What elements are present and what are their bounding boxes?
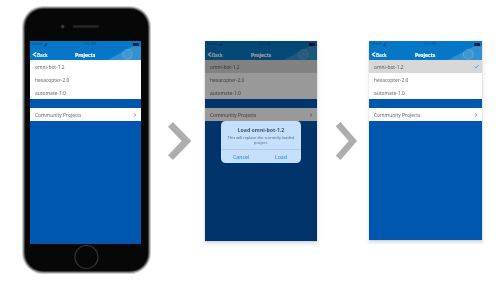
button[interactable]: omni-bot-1.2 [30,60,141,73]
staticText: Community Projects [35,112,82,119]
staticText: automate-1.0 [35,90,66,97]
staticText: Load omni-bot-1.2 [221,126,301,133]
button[interactable]: Back [205,49,317,60]
staticText: Projects [415,51,436,58]
staticText: 9:41 AM [84,42,97,46]
button[interactable]: hexacopter-2.0 [205,73,317,86]
staticText: Projects [251,51,272,58]
button[interactable]: Load [261,150,301,163]
button[interactable]: hexacopter-2.0 [369,73,482,86]
staticText: This will replace the currently loaded p… [227,135,295,145]
button[interactable]: omni-bot-1.2 [369,60,482,73]
staticText: 9:41 AM [259,42,272,46]
staticText: omni-bot-1.2 [35,64,65,71]
staticText: hexacopter-2.0 [35,77,70,84]
staticText: Community Projects [374,112,421,119]
staticText: Load [275,153,287,160]
other: Selected [474,64,479,69]
button[interactable]: automate-1.0 [30,86,141,99]
button[interactable]: Community Projects [369,108,482,121]
staticText: Projects [75,51,96,58]
staticText: omni-bot-1.2 [210,64,240,71]
button[interactable]: Community Projects [30,108,141,121]
staticText: Cancel [233,153,250,160]
button[interactable]: Back [369,49,482,60]
staticText: hexacopter-2.0 [210,77,245,84]
button[interactable]: hexacopter-2.0 [30,73,141,86]
staticText: Carrier [207,42,218,46]
staticText: 9:41 AM [424,42,437,46]
staticText: hexacopter-2.0 [374,77,409,84]
button[interactable]: Cancel [221,150,261,163]
button[interactable]: Community Projects [205,108,317,121]
button[interactable]: omni-bot-1.2 [205,60,317,73]
staticText: automate-1.0 [210,90,241,97]
staticText: omni-bot-1.2 [374,64,404,71]
staticText: Community Projects [210,112,257,119]
staticText: Back [212,52,223,58]
staticText: Carrier [32,42,43,46]
staticText: Back [376,52,387,58]
staticText: Carrier [371,42,382,46]
staticText: automate-1.0 [374,90,405,97]
button[interactable]: automate-1.0 [369,86,482,99]
button[interactable]: automate-1.0 [205,86,317,99]
staticText: Back [37,52,48,58]
button[interactable]: Back [30,49,141,60]
